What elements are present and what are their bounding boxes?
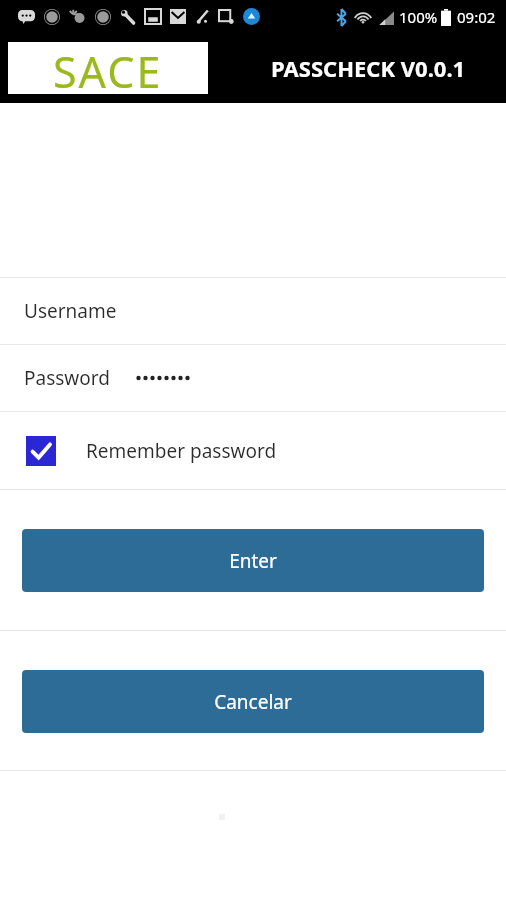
staticText: Password [24, 365, 110, 391]
staticText: Username [24, 298, 117, 324]
staticText: PASSCHECK V0.0.1 [271, 53, 466, 83]
staticText: 09:02 [457, 7, 496, 27]
button[interactable]: Remember password [0, 412, 506, 489]
button[interactable]: Username [0, 278, 506, 344]
staticText: Enter [229, 548, 277, 574]
staticText: Remember password [86, 438, 277, 464]
staticText: Cancelar [214, 689, 292, 715]
button[interactable]: Enter [22, 529, 484, 592]
staticText: 100% [399, 7, 438, 27]
staticText: SACE [53, 42, 163, 94]
button[interactable]: Password [0, 345, 506, 411]
button[interactable]: Cancelar [22, 670, 484, 733]
